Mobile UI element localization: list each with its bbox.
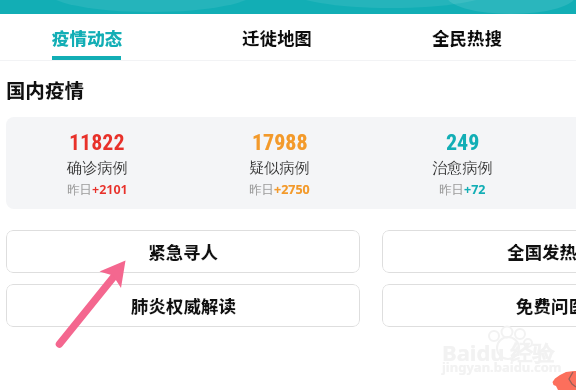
staticText: 紧急寻人: [148, 239, 218, 264]
staticText: 疫情动态: [52, 25, 122, 50]
staticText: 全民热搜: [432, 25, 502, 50]
staticText: 全国发热门诊: [507, 239, 576, 264]
staticText: 治愈病例: [432, 158, 493, 177]
button[interactable]: 全国发热门诊: [382, 230, 576, 273]
staticText: 确诊病例: [67, 158, 128, 177]
staticText: 17988: [252, 130, 308, 156]
button[interactable]: 疫情动态: [0, 14, 182, 60]
staticText: 肺炎权威解读: [131, 293, 236, 318]
staticText: jingyan.baidu.com: [442, 358, 562, 376]
button[interactable]: 免费问医生: [382, 284, 576, 327]
staticText: 迁徙地图: [242, 25, 312, 50]
staticText: 疑似病例: [249, 158, 310, 177]
staticText: 免费问医生: [516, 293, 576, 318]
button[interactable]: 迁徙地图: [182, 14, 372, 60]
staticText: 国内疫情: [6, 75, 85, 103]
button[interactable]: 紧急寻人: [6, 230, 360, 273]
staticText: 昨日: [249, 182, 274, 198]
staticText: +2750: [274, 181, 310, 198]
button[interactable]: 全民热搜: [372, 14, 562, 60]
staticText: 昨日: [67, 182, 92, 198]
staticText: 249: [446, 130, 480, 156]
staticText: Baidu 经验: [442, 337, 555, 367]
button[interactable]: 肺炎权威解读: [6, 284, 360, 327]
staticText: 11822: [69, 130, 125, 156]
staticText: 昨日: [439, 182, 464, 198]
staticText: +2101: [92, 181, 128, 198]
staticText: +72: [464, 181, 486, 198]
